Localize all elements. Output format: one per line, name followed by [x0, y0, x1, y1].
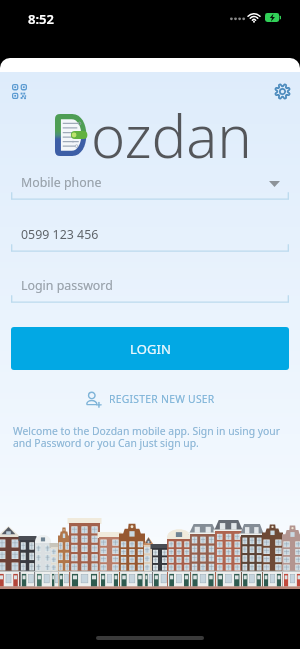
staticText: REGISTER NEW USER: [109, 392, 215, 406]
staticText: ozdan: [91, 96, 252, 175]
button[interactable]: REGISTER NEW USER: [0, 390, 300, 408]
staticText: LOGIN: [130, 340, 171, 358]
staticText: 8:52: [28, 10, 54, 28]
staticText: 0599 123 456: [21, 226, 99, 243]
staticText: Welcome to the Dozdan mobile app. Sign i…: [13, 424, 300, 438]
button[interactable]: Settings: [266, 75, 298, 107]
button[interactable]: Mobile phone: [11, 172, 289, 200]
button[interactable]: Login password: [11, 275, 289, 303]
staticText: and Password or you Can just sign up.: [13, 436, 199, 450]
button[interactable]: Scan QR code: [3, 75, 35, 107]
button[interactable]: LOGIN: [11, 327, 289, 370]
staticText: Mobile phone: [21, 174, 102, 191]
button[interactable]: 0599 123 456: [11, 224, 289, 252]
staticText: Login password: [21, 277, 113, 294]
